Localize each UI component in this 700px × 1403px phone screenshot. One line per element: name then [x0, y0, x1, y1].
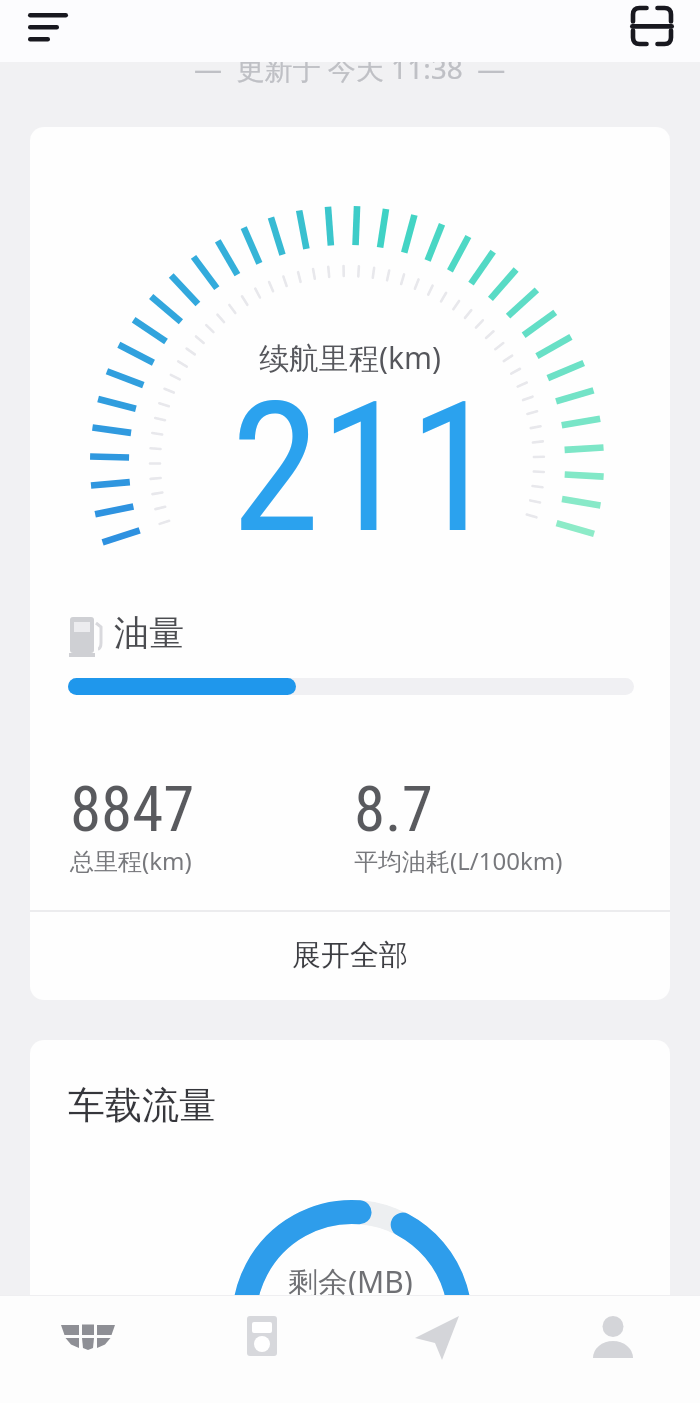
- staticText: 油量: [114, 611, 184, 655]
- button[interactable]: [175, 1295, 350, 1403]
- staticText: 总里程(km): [70, 844, 192, 877]
- staticText: 8847: [70, 773, 195, 847]
- button[interactable]: [18, 4, 74, 56]
- button[interactable]: [350, 1295, 525, 1403]
- staticText: 车载流量: [68, 1082, 216, 1129]
- staticText: 平均油耗(L/100km): [354, 844, 563, 877]
- staticText: — 更新于 今天 11:38 —: [194, 49, 506, 87]
- button[interactable]: [0, 1295, 175, 1403]
- staticText: 展开全部: [292, 937, 408, 974]
- staticText: 211: [231, 363, 498, 574]
- button[interactable]: 展开全部: [30, 911, 670, 1000]
- button[interactable]: [624, 0, 682, 54]
- staticText: 剩余(MB): [288, 1261, 413, 1302]
- button[interactable]: [525, 1295, 700, 1403]
- staticText: 续航里程(km): [259, 337, 442, 378]
- staticText: 8.7: [354, 773, 433, 847]
